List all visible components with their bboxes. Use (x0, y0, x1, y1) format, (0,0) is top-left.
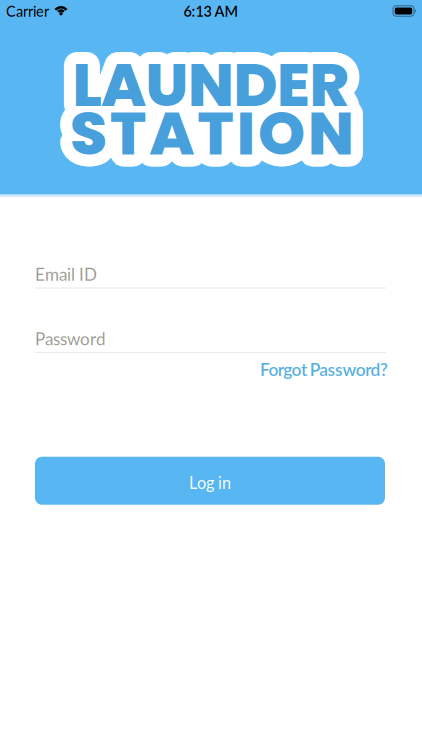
staticText: N (176, 43, 222, 127)
staticText: L (63, 51, 92, 135)
staticText: I (235, 80, 253, 164)
staticText: R (304, 37, 344, 121)
staticText: I (239, 103, 257, 187)
staticText: O (250, 88, 297, 172)
staticText: E (274, 50, 307, 134)
staticText: A (157, 82, 202, 166)
staticText: S (68, 80, 105, 164)
staticText: L (61, 41, 90, 125)
staticText: A (137, 89, 182, 173)
staticText: S (79, 84, 116, 168)
staticText: N (301, 88, 347, 172)
staticText: E (281, 54, 314, 138)
staticText: N (302, 86, 348, 170)
staticText: T (118, 101, 154, 185)
staticText: N (314, 102, 360, 186)
staticText: S (66, 80, 103, 164)
staticText: N (308, 79, 354, 163)
staticText: E (265, 43, 298, 127)
staticText: T (118, 91, 154, 175)
button[interactable]: Log in (35, 457, 385, 505)
staticText: U (157, 41, 200, 125)
staticText: I (227, 99, 245, 183)
staticText: N (315, 95, 361, 179)
staticText: Email ID (35, 264, 97, 284)
staticText: A (97, 32, 142, 116)
staticText: I (247, 85, 265, 169)
staticText: D (244, 49, 288, 133)
staticText: N (317, 99, 363, 183)
staticText: I (237, 99, 255, 183)
staticText: O (267, 84, 314, 168)
staticText: A (147, 80, 192, 164)
staticText: D (241, 46, 285, 130)
staticText: L (70, 31, 99, 115)
staticText: S (70, 83, 107, 167)
staticText: A (112, 47, 157, 131)
staticText: A (94, 46, 139, 130)
staticText: L (62, 37, 91, 121)
staticText: T (108, 80, 144, 164)
staticText: E (283, 37, 316, 121)
staticText: R (301, 43, 341, 127)
staticText: A (98, 50, 143, 134)
staticText: N (319, 96, 365, 180)
textField[interactable]: Email ID (35, 264, 386, 284)
button[interactable]: Forgot Password? (258, 359, 386, 380)
staticText: N (305, 99, 351, 183)
staticText: A (91, 37, 136, 121)
staticText: E (285, 34, 318, 118)
staticText: T (194, 84, 230, 168)
staticText: N (199, 39, 245, 123)
staticText: S (78, 91, 115, 175)
staticText: N (182, 33, 228, 117)
staticText: I (248, 94, 266, 178)
staticText: A (97, 54, 142, 138)
staticText: T (110, 91, 146, 175)
staticText: O (254, 103, 301, 187)
staticText: O (266, 101, 313, 185)
staticText: A (94, 40, 139, 124)
staticText: T (185, 91, 221, 175)
staticText: D (243, 51, 287, 135)
staticText: A (141, 91, 186, 175)
staticText: D (229, 32, 273, 116)
staticText: I (226, 97, 244, 181)
staticText: I (245, 91, 263, 175)
secureTextField[interactable]: Password (35, 328, 386, 349)
staticText: I (231, 97, 249, 181)
staticText: E (284, 40, 317, 124)
staticText: T (116, 102, 152, 186)
staticText: N (300, 82, 346, 166)
staticText: U (138, 34, 181, 118)
staticText: R (320, 37, 360, 121)
staticText: S (64, 97, 101, 181)
staticText: N (308, 99, 354, 183)
staticText: A (107, 37, 152, 121)
staticText: O (265, 95, 312, 179)
staticText: T (200, 80, 236, 164)
staticText: T (208, 97, 244, 181)
staticText: T (112, 80, 148, 164)
staticText: N (317, 84, 363, 168)
staticText: S (81, 96, 118, 180)
staticText: A (153, 80, 198, 164)
staticText: E (279, 31, 312, 115)
staticText: O (264, 86, 311, 170)
staticText: L (83, 37, 112, 121)
staticText: U (150, 32, 193, 116)
staticText: T (186, 94, 222, 178)
staticText: I (248, 96, 266, 180)
staticText: E (289, 45, 322, 129)
staticText: R (302, 46, 342, 130)
staticText: R (321, 45, 361, 129)
staticText: N (304, 80, 350, 164)
staticText: R (319, 35, 359, 119)
staticText: T (203, 102, 239, 186)
staticText: R (317, 40, 357, 124)
staticText: R (309, 31, 349, 115)
staticText: S (82, 89, 119, 173)
staticText: A (138, 87, 183, 171)
staticText: I (229, 101, 247, 185)
staticText: D (228, 49, 272, 133)
